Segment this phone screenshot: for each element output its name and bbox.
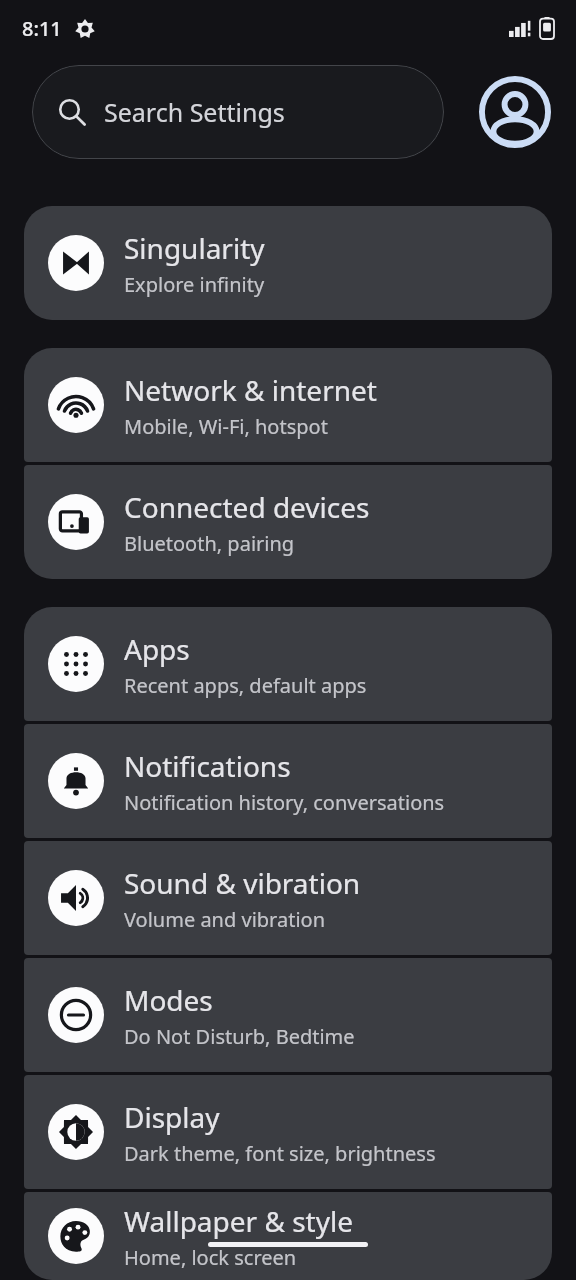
button[interactable]: Sound & vibration	[24, 841, 552, 955]
button[interactable]: Apps	[24, 607, 552, 721]
button[interactable]: Search Settings	[32, 65, 444, 159]
staticText: Singularity	[124, 229, 265, 267]
staticText: Notifications	[124, 747, 291, 785]
staticText: Connected devices	[124, 488, 370, 526]
button[interactable]: Modes	[24, 958, 552, 1072]
staticText: Bluetooth, pairing	[124, 530, 295, 557]
staticText: Sound & vibration	[124, 864, 361, 902]
staticText: Network & internet	[124, 371, 377, 409]
staticText: Display	[124, 1098, 220, 1136]
staticText: Dark theme, font size, brightness	[124, 1140, 436, 1167]
staticText: Search Settings	[104, 95, 285, 129]
staticText: Volume and vibration	[124, 906, 326, 933]
staticText: Explore infinity	[124, 271, 265, 298]
button[interactable]: Notifications	[24, 724, 552, 838]
staticText: Notification history, conversations	[124, 789, 445, 816]
staticText: Mobile, Wi-Fi, hotspot	[124, 413, 328, 440]
staticText: Wallpaper & style	[124, 1202, 354, 1240]
staticText: Do Not Disturb, Bedtime	[124, 1023, 355, 1050]
button[interactable]: Connected devices	[24, 465, 552, 579]
button[interactable]: Singularity	[24, 206, 552, 320]
staticText: Recent apps, default apps	[124, 672, 367, 699]
button[interactable]: Display	[24, 1075, 552, 1189]
button[interactable]: Network & internet	[24, 348, 552, 462]
staticText: Home, lock screen	[124, 1244, 297, 1271]
button[interactable]: Account	[478, 75, 552, 149]
staticText: Modes	[124, 981, 213, 1019]
staticText: Apps	[124, 630, 190, 668]
staticText: 8:11	[22, 15, 62, 42]
button[interactable]: Wallpaper & style	[24, 1192, 552, 1280]
